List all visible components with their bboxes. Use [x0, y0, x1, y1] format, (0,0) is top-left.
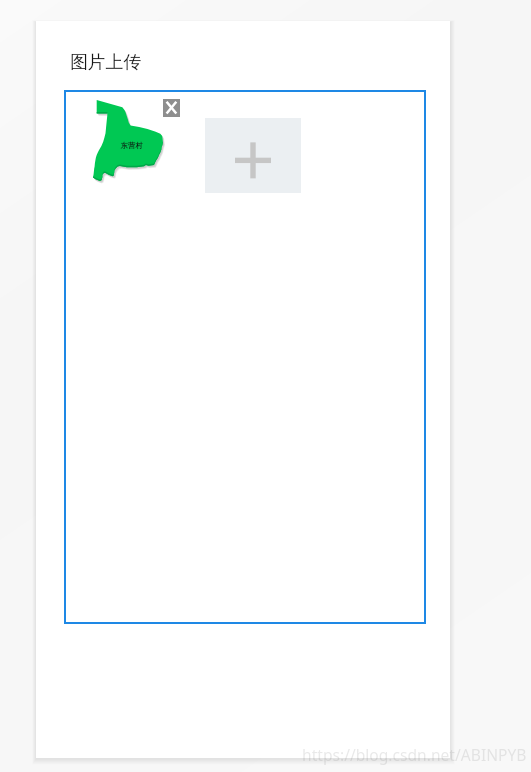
staticText: 图片上传 — [70, 51, 142, 73]
button[interactable]: 东营村 preview image — [93, 100, 163, 181]
staticText: 东营村 — [121, 141, 143, 150]
button[interactable]: Remove image — [163, 99, 180, 117]
staticText: https://blog.csdn.net/ABINPYB — [302, 744, 527, 765]
button[interactable]: Add image — [205, 118, 301, 193]
